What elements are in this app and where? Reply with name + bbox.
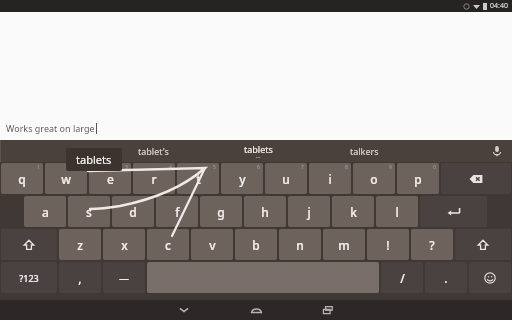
button[interactable]: tablet's bbox=[132, 142, 175, 160]
staticText: x bbox=[121, 237, 128, 253]
button[interactable]: 0 bbox=[397, 163, 439, 194]
button[interactable]: 6 bbox=[221, 163, 263, 194]
button[interactable]: ?123 bbox=[1, 262, 57, 293]
button[interactable]: m bbox=[323, 229, 365, 260]
staticText: f bbox=[175, 204, 180, 220]
staticText: 04:40 bbox=[490, 1, 508, 11]
button[interactable]: Shift bbox=[1, 229, 57, 260]
button[interactable]: tablets bbox=[238, 143, 279, 160]
staticText: 9 bbox=[389, 164, 392, 171]
staticText: tablet's bbox=[138, 145, 169, 157]
staticText: v bbox=[209, 237, 216, 253]
button[interactable]: Voice input bbox=[490, 144, 504, 158]
staticText: k bbox=[350, 204, 357, 220]
button[interactable]: 5 bbox=[177, 163, 219, 194]
button[interactable]: ! bbox=[367, 229, 409, 260]
button[interactable]: c bbox=[147, 229, 189, 260]
button[interactable]: j bbox=[288, 196, 330, 227]
button[interactable]: f bbox=[156, 196, 198, 227]
button[interactable]: z bbox=[59, 229, 101, 260]
button[interactable]: g bbox=[200, 196, 242, 227]
button[interactable]: Backspace bbox=[441, 163, 511, 194]
staticText: 5 bbox=[213, 164, 216, 171]
button[interactable]: 8 bbox=[309, 163, 351, 194]
staticText: o bbox=[370, 171, 378, 187]
button[interactable]: x bbox=[103, 229, 145, 260]
button[interactable]: Shift bbox=[455, 229, 511, 260]
staticText: tablets bbox=[76, 152, 112, 167]
button[interactable]: l bbox=[376, 196, 418, 227]
staticText: / bbox=[400, 270, 405, 286]
button[interactable]: v bbox=[191, 229, 233, 260]
staticText: l bbox=[395, 204, 399, 220]
button[interactable]: talkers bbox=[344, 142, 385, 160]
button[interactable]: / bbox=[381, 262, 423, 293]
staticText: e bbox=[107, 171, 114, 187]
staticText: a bbox=[42, 204, 49, 220]
staticText: d bbox=[129, 204, 137, 220]
button[interactable]: . bbox=[425, 262, 467, 293]
staticText: i bbox=[328, 171, 332, 187]
button[interactable]: s bbox=[68, 196, 110, 227]
staticText: h bbox=[261, 204, 269, 220]
button[interactable]: h bbox=[244, 196, 286, 227]
staticText: g bbox=[217, 204, 225, 220]
button[interactable]: 3 bbox=[89, 163, 131, 194]
staticText: z bbox=[77, 237, 83, 253]
button[interactable]: d bbox=[112, 196, 154, 227]
staticText: s bbox=[86, 204, 92, 220]
button[interactable]: Recent apps bbox=[316, 300, 340, 320]
staticText: ••• bbox=[256, 155, 261, 160]
staticText: n bbox=[296, 237, 304, 253]
button[interactable]: Enter bbox=[420, 196, 487, 227]
button[interactable]: 1 bbox=[1, 163, 43, 194]
staticText: c bbox=[165, 237, 171, 253]
button[interactable]: Emoji bbox=[469, 262, 511, 293]
staticText: 1 bbox=[37, 164, 40, 171]
staticText: 8 bbox=[345, 164, 348, 171]
staticText: r bbox=[151, 171, 157, 187]
staticText: b bbox=[252, 237, 260, 253]
button[interactable]: b bbox=[235, 229, 277, 260]
button[interactable]: 7 bbox=[265, 163, 307, 194]
staticText: y bbox=[239, 171, 246, 187]
staticText: — bbox=[119, 271, 129, 285]
button[interactable]: a bbox=[24, 196, 66, 227]
staticText: q bbox=[18, 171, 26, 187]
button[interactable]: 4 bbox=[133, 163, 175, 194]
staticText: . bbox=[444, 270, 448, 286]
staticText: w bbox=[61, 171, 71, 187]
button[interactable]: — bbox=[103, 262, 145, 293]
staticText: ? bbox=[429, 237, 435, 253]
button[interactable]: , bbox=[59, 262, 101, 293]
staticText: , bbox=[78, 270, 82, 286]
button[interactable]: 9 bbox=[353, 163, 395, 194]
staticText: 7 bbox=[301, 164, 304, 171]
staticText: 4 bbox=[169, 164, 172, 171]
staticText: ?123 bbox=[19, 272, 39, 284]
button[interactable]: k bbox=[332, 196, 374, 227]
staticText: 3 bbox=[125, 164, 128, 171]
button[interactable]: Hide keyboard bbox=[172, 300, 196, 320]
staticText: m bbox=[338, 237, 350, 253]
staticText: t bbox=[196, 171, 201, 187]
button[interactable]: 2 bbox=[45, 163, 87, 194]
staticText: talkers bbox=[350, 145, 379, 157]
staticText: tablets bbox=[244, 143, 273, 155]
staticText: 6 bbox=[257, 164, 260, 171]
button[interactable]: Home bbox=[244, 300, 268, 320]
staticText: p bbox=[414, 171, 422, 187]
staticText: ! bbox=[386, 237, 390, 253]
button[interactable]: ? bbox=[411, 229, 453, 260]
staticText: 0 bbox=[433, 164, 436, 171]
staticText: j bbox=[307, 204, 311, 220]
staticText: u bbox=[282, 171, 290, 187]
staticText: Works great on large bbox=[6, 122, 95, 134]
button[interactable]: n bbox=[279, 229, 321, 260]
button[interactable]: tablets bbox=[66, 148, 122, 171]
